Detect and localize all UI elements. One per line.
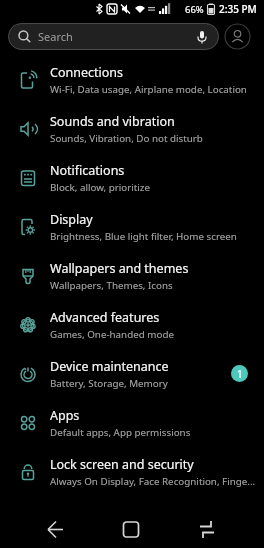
staticText: Connections bbox=[50, 64, 123, 81]
staticText: Wallpapers and themes bbox=[50, 260, 189, 277]
staticText: Search bbox=[38, 29, 73, 44]
staticText: Wi-Fi, Data usage, Airplane mode, Locati… bbox=[50, 83, 247, 96]
staticText: Notifications bbox=[50, 162, 125, 179]
staticText: Display bbox=[50, 211, 93, 228]
staticText: Apps bbox=[50, 407, 80, 424]
button[interactable] bbox=[0, 507, 88, 548]
staticText: Block, allow, prioritize bbox=[50, 181, 150, 194]
staticText: Advanced features bbox=[50, 309, 160, 326]
staticText: 2:35 PM bbox=[219, 2, 257, 16]
button[interactable]: Lock screen and security bbox=[0, 447, 264, 496]
button[interactable] bbox=[224, 23, 251, 50]
button[interactable]: Display bbox=[0, 202, 264, 251]
button[interactable]: Wallpapers and themes bbox=[0, 251, 264, 300]
staticText: 66% bbox=[185, 3, 204, 16]
staticText: Sounds and vibration bbox=[50, 113, 175, 130]
staticText: Default apps, App permissions bbox=[50, 426, 191, 439]
staticText: Wallpapers, Themes, Icons bbox=[50, 279, 173, 292]
staticText: Always On Display, Face Recognition, Fin… bbox=[50, 475, 256, 488]
staticText: 1 bbox=[237, 367, 243, 381]
staticText: Lock screen and security bbox=[50, 456, 194, 473]
button[interactable] bbox=[195, 30, 209, 44]
button[interactable]: Sounds and vibration bbox=[0, 104, 264, 153]
button[interactable]: Search bbox=[8, 23, 219, 50]
button[interactable]: Connections bbox=[0, 55, 264, 104]
button[interactable]: Notifications bbox=[0, 153, 264, 202]
staticText: Sounds, Vibration, Do not disturb bbox=[50, 132, 203, 145]
staticText: Brightness, Blue light filter, Home scre… bbox=[50, 230, 237, 243]
staticText: Device maintenance bbox=[50, 358, 169, 375]
button[interactable] bbox=[176, 507, 264, 548]
button[interactable]: Apps bbox=[0, 398, 264, 447]
staticText: Battery, Storage, Memory bbox=[50, 377, 168, 390]
button[interactable]: Advanced features bbox=[0, 300, 264, 349]
button[interactable] bbox=[88, 507, 176, 548]
button[interactable]: Device maintenance bbox=[0, 349, 264, 398]
staticText: Games, One-handed mode bbox=[50, 328, 174, 341]
